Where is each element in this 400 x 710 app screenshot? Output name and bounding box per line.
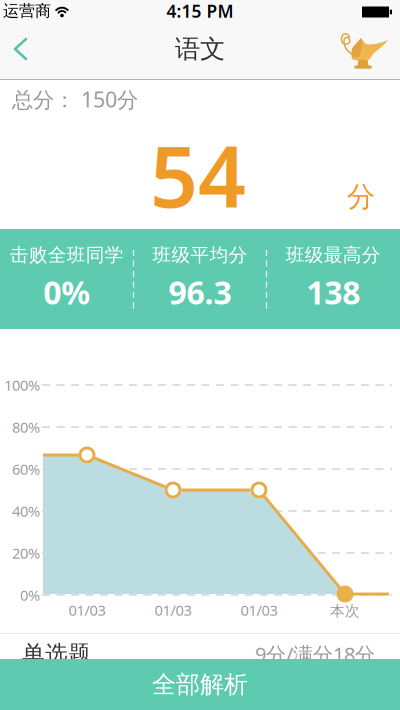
staticText: 96.3: [168, 271, 231, 313]
staticText: 0%: [20, 585, 40, 605]
button[interactable]: Magic Lamp: [335, 27, 391, 73]
staticText: 语文: [175, 33, 225, 64]
staticText: 运营商: [3, 1, 51, 21]
staticText: 20%: [12, 543, 40, 563]
staticText: 本次: [330, 602, 360, 620]
button[interactable]: 全部解析: [0, 659, 400, 710]
staticText: 4:15 PM: [166, 0, 233, 22]
staticText: 138: [306, 271, 360, 313]
staticText: 0%: [43, 271, 90, 313]
staticText: 班级最高分: [286, 243, 381, 266]
staticText: 总分： 150分: [12, 85, 138, 113]
staticText: 分: [347, 180, 375, 214]
staticText: 54: [150, 119, 246, 231]
staticText: 60%: [12, 459, 40, 479]
staticText: 01/03: [154, 600, 191, 620]
staticText: 100%: [4, 375, 40, 395]
staticText: 01/03: [68, 600, 105, 620]
staticText: 01/03: [240, 600, 277, 620]
staticText: 击败全班同学: [10, 243, 124, 266]
staticText: 全部解析: [152, 670, 248, 699]
staticText: 80%: [12, 417, 40, 437]
button[interactable]: 单选题: [0, 634, 400, 674]
staticText: 单选题: [22, 640, 91, 668]
staticText: 40%: [12, 501, 40, 521]
button[interactable]: Back: [5, 29, 35, 69]
staticText: 9分/满分18分: [255, 641, 375, 667]
staticText: 班级平均分: [152, 243, 247, 266]
